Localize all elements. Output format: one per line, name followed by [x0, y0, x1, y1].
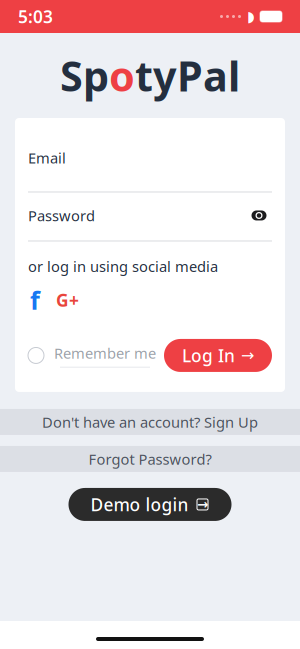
- button[interactable]: Forgot Password?: [0, 446, 300, 472]
- staticText: 5:03: [18, 5, 53, 28]
- staticText: or log in using social media: [28, 256, 218, 276]
- staticText: →: [197, 497, 208, 512]
- staticText: Log In: [182, 344, 235, 367]
- staticText: →: [241, 346, 254, 365]
- staticText: Demo login: [90, 493, 188, 516]
- button[interactable]: Log in with Google: [56, 289, 79, 311]
- staticText: Don't have an account? Sign Up: [42, 412, 258, 432]
- staticText: Sp: [60, 48, 109, 103]
- button[interactable]: Log In: [164, 339, 272, 372]
- button[interactable]: Show password: [246, 205, 272, 225]
- staticText: o: [109, 48, 135, 103]
- button[interactable]: Demo login: [68, 488, 231, 521]
- staticText: ◗: [247, 8, 255, 25]
- staticText: Email: [28, 148, 66, 167]
- staticText: Password: [28, 206, 95, 225]
- button[interactable]: Log in with Facebook: [28, 289, 42, 311]
- staticText: Remember me: [54, 343, 156, 363]
- staticText: Forgot Password?: [88, 449, 211, 469]
- staticText: tyPal: [135, 48, 240, 103]
- staticText: G+: [56, 288, 79, 311]
- button[interactable]: Don't have an account? Sign Up: [0, 409, 300, 435]
- staticText: f: [30, 283, 40, 317]
- button[interactable]: Remember me: [28, 343, 156, 368]
